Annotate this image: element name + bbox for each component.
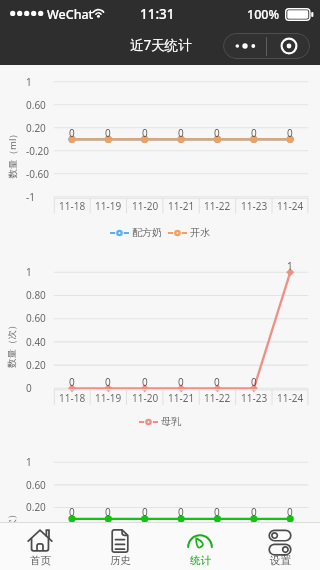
staticText: 1 [26, 75, 32, 89]
staticText: 0.80 [26, 288, 46, 302]
staticText: 0 [105, 505, 111, 519]
staticText: 11-23 [241, 199, 268, 213]
staticText: 11-19 [95, 199, 122, 213]
staticText: 11-18 [59, 199, 86, 213]
staticText: 0 [214, 375, 220, 389]
staticText: 0.40 [26, 335, 46, 349]
staticText: 0 [69, 505, 75, 519]
staticText: 0 [105, 126, 111, 140]
staticText: 数量（ml） [5, 128, 18, 178]
staticText: 历史 [110, 554, 131, 567]
staticText: -1 [26, 190, 35, 204]
staticText: 11-20 [132, 199, 159, 213]
staticText: 0 [26, 381, 32, 395]
staticText: 0.60 [26, 311, 46, 325]
staticText: 11-19 [95, 391, 122, 405]
button[interactable]: 开水 [168, 226, 210, 239]
staticText: 0 [142, 505, 148, 519]
staticText: 0.60 [26, 478, 46, 492]
staticText: 首页 [30, 554, 51, 567]
staticText: 100% [247, 6, 280, 23]
button[interactable]: 首页 [0, 523, 80, 570]
button[interactable]: Close mini program [267, 33, 310, 59]
staticText: 0.20 [26, 500, 46, 514]
staticText: 0.20 [26, 121, 46, 135]
staticText: 11-22 [204, 199, 231, 213]
staticText: 0 [251, 505, 257, 519]
staticText: 0 [214, 126, 220, 140]
button[interactable]: 母乳 [139, 415, 181, 428]
staticText: 11-24 [277, 391, 304, 405]
staticText: 0 [178, 375, 184, 389]
staticText: 1 [26, 265, 32, 279]
staticText: -0.20 [26, 144, 50, 158]
staticText: 统计 [190, 554, 211, 567]
staticText: 0.60 [26, 98, 46, 112]
staticText: 数量（次） [6, 509, 18, 557]
staticText: 11-21 [168, 199, 195, 213]
staticText: 0 [214, 505, 220, 519]
staticText: 0 [251, 375, 257, 389]
staticText: 0 [287, 505, 293, 519]
staticText: 0 [142, 126, 148, 140]
staticText: 11-20 [132, 391, 159, 405]
staticText: 设置 [270, 554, 291, 567]
staticText: 11-24 [277, 199, 304, 213]
staticText: 数量（次） [6, 320, 18, 368]
staticText: 0 [69, 126, 75, 140]
staticText: -0.60 [26, 546, 50, 560]
staticText: 0 [251, 126, 257, 140]
staticText: 0 [69, 375, 75, 389]
staticText: 开水 [190, 226, 210, 239]
button[interactable]: 统计 [160, 523, 240, 570]
staticText: 配方奶 [132, 226, 162, 239]
button[interactable]: 设置 [240, 523, 320, 570]
staticText: WeChat [47, 6, 94, 23]
staticText: 0 [178, 126, 184, 140]
staticText: 11-21 [168, 391, 195, 405]
staticText: 1 [287, 259, 293, 273]
staticText: 0.20 [26, 358, 46, 372]
staticText: 1 [26, 455, 32, 469]
button[interactable]: More options [223, 33, 266, 59]
staticText: 0 [142, 375, 148, 389]
staticText: 母乳 [161, 415, 181, 428]
staticText: 0 [178, 505, 184, 519]
staticText: 0 [105, 375, 111, 389]
staticText: 11-18 [59, 391, 86, 405]
button[interactable]: 历史 [80, 523, 160, 570]
staticText: 近7天统计 [130, 36, 192, 54]
button[interactable]: 配方奶 [110, 226, 162, 239]
staticText: 11:31 [140, 5, 175, 23]
staticText: 11-22 [204, 391, 231, 405]
staticText: -0.60 [26, 167, 50, 181]
staticText: -0.20 [26, 523, 50, 537]
staticText: 11-23 [241, 391, 268, 405]
staticText: 0 [287, 126, 293, 140]
